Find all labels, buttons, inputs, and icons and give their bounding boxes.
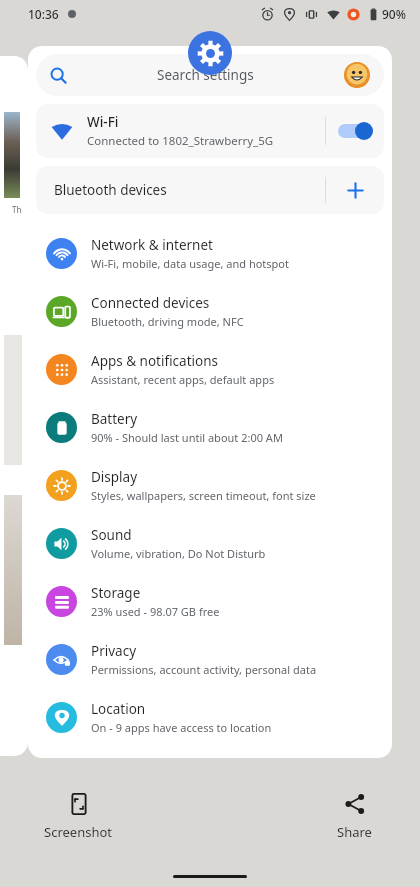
button[interactable]: Location	[28, 688, 392, 746]
staticText: Network & internet	[91, 236, 213, 254]
staticText: Permissions, account activity, personal …	[91, 662, 317, 677]
staticText: Assistant, recent apps, default apps	[91, 372, 275, 387]
button[interactable]: Apps & notifications	[28, 340, 392, 398]
staticText: Sound	[91, 526, 132, 544]
staticText: Bluetooth devices	[54, 181, 167, 199]
button[interactable]: Privacy	[28, 630, 392, 688]
staticText: Search settings	[157, 66, 254, 84]
staticText: 23% used - 98.07 GB free	[91, 604, 220, 619]
staticText: Volume, vibration, Do Not Disturb	[91, 546, 266, 561]
button[interactable]: Connected devices	[28, 282, 392, 340]
button[interactable]: Share	[327, 789, 382, 845]
staticText: Share	[337, 823, 372, 841]
button[interactable]: Th	[0, 56, 28, 756]
staticText: 90% - Should last until about 2:00 AM	[91, 430, 283, 445]
button[interactable]: Wi-Fi toggle	[326, 104, 384, 158]
staticText: 10:36	[28, 6, 59, 22]
staticText: Connected to 1802_Strawberry_5G	[87, 133, 274, 149]
staticText: Wi-Fi	[87, 113, 119, 131]
button[interactable]: Search settings	[36, 54, 384, 96]
button[interactable]: Display	[28, 456, 392, 514]
button[interactable]: Network & internet	[28, 224, 392, 282]
staticText: Th	[12, 204, 22, 215]
staticText: Screenshot	[44, 823, 113, 841]
button[interactable]: Add Bluetooth device	[326, 166, 384, 214]
button[interactable]: Bluetooth devices	[36, 166, 384, 214]
button[interactable]: Sound	[28, 514, 392, 572]
button[interactable]: Screenshot	[34, 789, 123, 845]
staticText: Wi-Fi, mobile, data usage, and hotspot	[91, 256, 289, 271]
staticText: Location	[91, 700, 146, 718]
button[interactable]: Wi-Fi	[36, 104, 384, 158]
button[interactable]: Battery	[28, 398, 392, 456]
staticText: On - 9 apps have access to location	[91, 720, 272, 735]
staticText: Apps & notifications	[91, 352, 218, 370]
staticText: Storage	[91, 584, 141, 602]
button[interactable]: Settings app icon	[188, 31, 232, 75]
button[interactable]: Storage	[28, 572, 392, 630]
staticText: Battery	[91, 410, 138, 428]
button[interactable]: Account	[344, 62, 370, 88]
staticText: Bluetooth, driving mode, NFC	[91, 314, 244, 329]
staticText: Connected devices	[91, 294, 210, 312]
staticText: Styles, wallpapers, screen timeout, font…	[91, 488, 316, 503]
staticText: 90%	[382, 6, 406, 22]
staticText: Display	[91, 468, 138, 486]
staticText: Privacy	[91, 642, 137, 660]
